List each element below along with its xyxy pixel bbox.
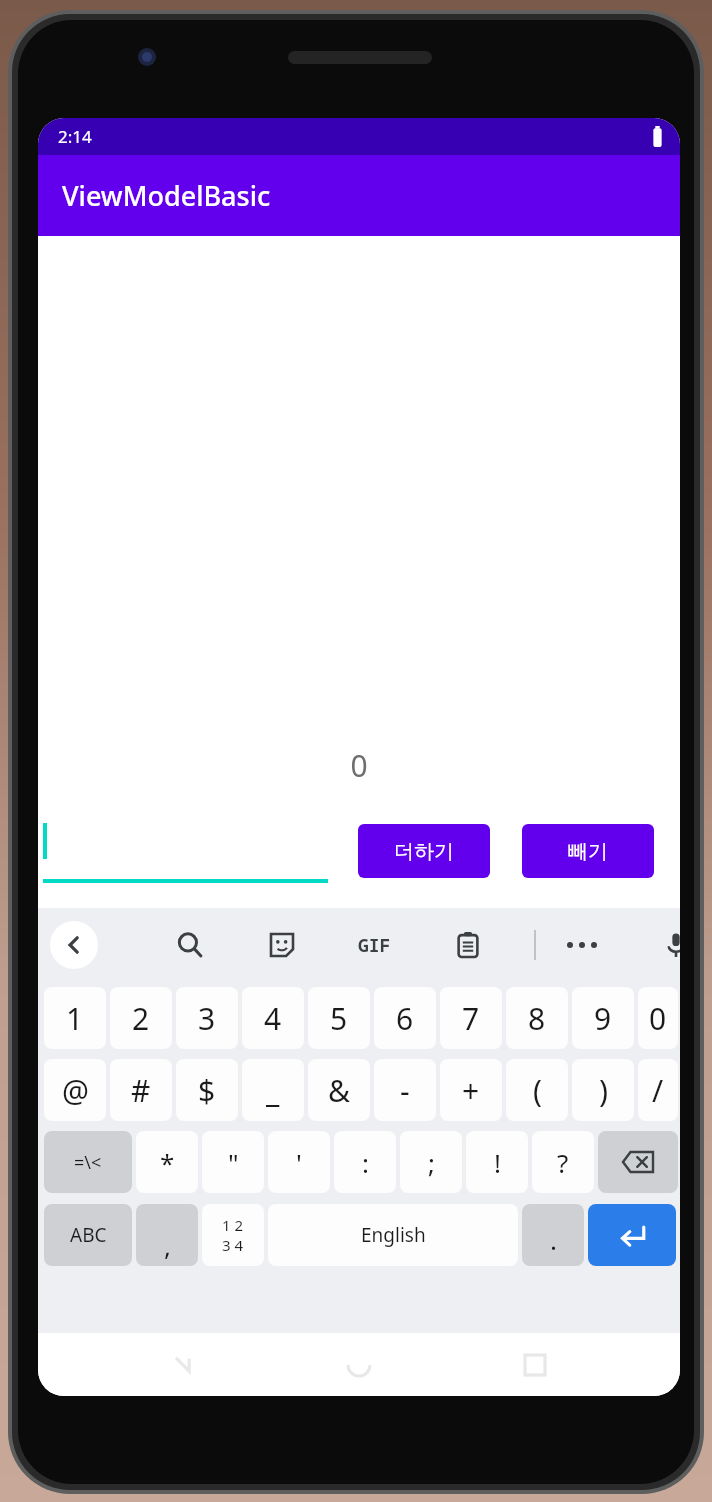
button[interactable]: " <box>202 1131 264 1193</box>
staticText: 2:14 <box>58 125 92 148</box>
staticText: / <box>652 1070 664 1111</box>
staticText: # <box>131 1070 151 1111</box>
button[interactable]: 8 <box>506 987 568 1049</box>
staticText: + <box>462 1070 480 1111</box>
staticText: , <box>164 1228 171 1263</box>
staticText: & <box>328 1070 350 1111</box>
button[interactable]: English <box>268 1204 518 1266</box>
staticText: 8 <box>528 998 546 1039</box>
button[interactable]: =\< <box>44 1131 132 1193</box>
button[interactable]: _ <box>242 1059 304 1121</box>
button[interactable]: 3 <box>176 987 238 1049</box>
staticText: : <box>362 1145 369 1180</box>
button[interactable]: ; <box>400 1131 462 1193</box>
staticText: ViewModelBasic <box>62 177 271 214</box>
button[interactable]: 6 <box>374 987 436 1049</box>
staticText: $ <box>198 1070 216 1111</box>
button[interactable]: 9 <box>572 987 634 1049</box>
button[interactable]: : <box>334 1131 396 1193</box>
staticText: 0 <box>649 998 667 1039</box>
button[interactable]: & <box>308 1059 370 1121</box>
staticText: 9 <box>594 998 612 1039</box>
button[interactable]: # <box>110 1059 172 1121</box>
button[interactable]: 5 <box>308 987 370 1049</box>
staticText: 1 2 <box>222 1215 244 1235</box>
button[interactable]: Home <box>332 1338 386 1392</box>
button[interactable]: Voice input <box>652 921 680 969</box>
staticText: @ <box>62 1070 89 1111</box>
button[interactable]: 4 <box>242 987 304 1049</box>
button[interactable]: Back <box>156 1338 210 1392</box>
button[interactable]: 빼기 <box>522 824 654 878</box>
button[interactable]: Search <box>166 921 214 969</box>
button[interactable]: ABC <box>44 1204 132 1266</box>
button[interactable]: Back <box>50 921 98 969</box>
button[interactable]: Backspace <box>598 1131 678 1193</box>
staticText: " <box>228 1145 239 1180</box>
staticText: English <box>361 1222 426 1248</box>
button[interactable]: ( <box>506 1059 568 1121</box>
button[interactable]: Recents <box>508 1338 562 1392</box>
staticText: ? <box>557 1145 569 1180</box>
staticText: 3 4 <box>222 1235 244 1255</box>
staticText: 4 <box>264 998 282 1039</box>
staticText: ABC <box>70 1222 107 1248</box>
staticText: _ <box>266 1070 280 1111</box>
button[interactable]: 더하기 <box>358 824 490 878</box>
button[interactable]: , <box>136 1204 198 1266</box>
button[interactable]: ! <box>466 1131 528 1193</box>
staticText: 5 <box>330 998 348 1039</box>
staticText: . <box>550 1222 557 1257</box>
button[interactable]: 1 <box>44 987 106 1049</box>
button[interactable]: + <box>440 1059 502 1121</box>
button[interactable]: Enter <box>588 1204 676 1266</box>
staticText: 6 <box>396 998 414 1039</box>
staticText: 2 <box>132 998 150 1039</box>
button[interactable]: ? <box>532 1131 594 1193</box>
button[interactable]: 7 <box>440 987 502 1049</box>
staticText: 더하기 <box>394 839 454 864</box>
button[interactable]: 2 <box>110 987 172 1049</box>
staticText: 7 <box>462 998 480 1039</box>
staticText: ) <box>599 1070 608 1111</box>
button[interactable]: ' <box>268 1131 330 1193</box>
button[interactable]: GIF <box>350 921 398 969</box>
staticText: 3 <box>198 998 216 1039</box>
button[interactable]: $ <box>176 1059 238 1121</box>
button[interactable]: - <box>374 1059 436 1121</box>
button[interactable]: 0 <box>638 987 678 1049</box>
button[interactable]: Stickers <box>258 921 306 969</box>
button[interactable]: Clipboard <box>444 921 492 969</box>
button[interactable]: More options <box>558 921 606 969</box>
button[interactable]: . <box>522 1204 584 1266</box>
button[interactable]: * <box>136 1131 198 1193</box>
staticText: 빼기 <box>568 839 608 864</box>
button[interactable]: @ <box>44 1059 106 1121</box>
staticText: ! <box>494 1145 501 1180</box>
staticText: =\< <box>74 1150 102 1175</box>
staticText: GIF <box>358 933 391 958</box>
button[interactable]: ) <box>572 1059 634 1121</box>
staticText: ; <box>428 1145 435 1180</box>
button[interactable]: Numbers <box>202 1204 264 1266</box>
staticText: 1 <box>66 998 84 1039</box>
staticText: ( <box>533 1070 542 1111</box>
button[interactable]: Number input <box>43 821 328 883</box>
staticText: * <box>160 1145 175 1180</box>
staticText: 0 <box>350 745 368 786</box>
staticText: ' <box>296 1145 302 1180</box>
staticText: - <box>400 1070 410 1111</box>
button[interactable]: / <box>638 1059 678 1121</box>
